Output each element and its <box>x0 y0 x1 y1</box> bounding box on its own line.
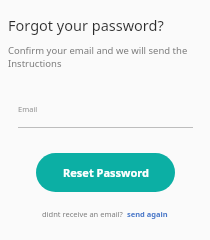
staticText: didnt receive an email? <box>42 209 123 219</box>
button[interactable]: Reset Password <box>36 153 175 192</box>
staticText: Confirm your email and we will send the … <box>8 44 188 70</box>
staticText: send again <box>127 209 168 219</box>
button[interactable]: Email <box>18 104 193 128</box>
staticText: Email <box>18 104 38 114</box>
button[interactable]: Send email again <box>127 209 168 219</box>
staticText: Reset Password <box>63 165 149 180</box>
staticText: Forgot your password? <box>8 15 164 35</box>
